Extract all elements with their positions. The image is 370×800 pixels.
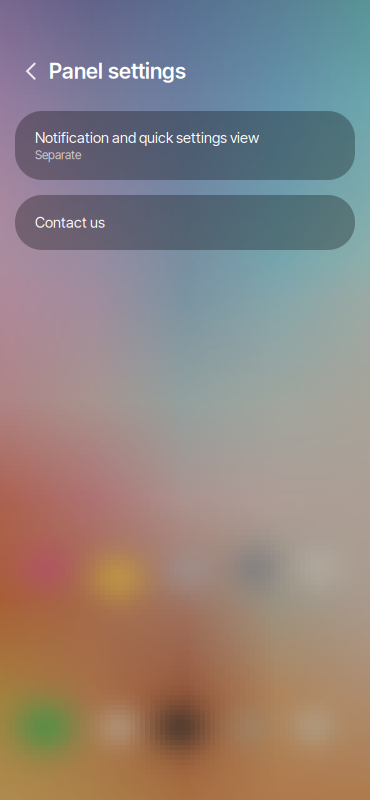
- staticText: Panel settings: [49, 58, 186, 84]
- staticText: Contact us: [35, 214, 105, 231]
- staticText: Notification and quick settings view: [35, 129, 259, 147]
- staticText: Separate: [35, 148, 81, 162]
- button[interactable]: Back: [19, 52, 43, 90]
- button[interactable]: Panel settings: [49, 52, 186, 90]
- button[interactable]: Notification and quick settings view: [15, 111, 355, 180]
- button[interactable]: Contact us: [15, 195, 355, 250]
